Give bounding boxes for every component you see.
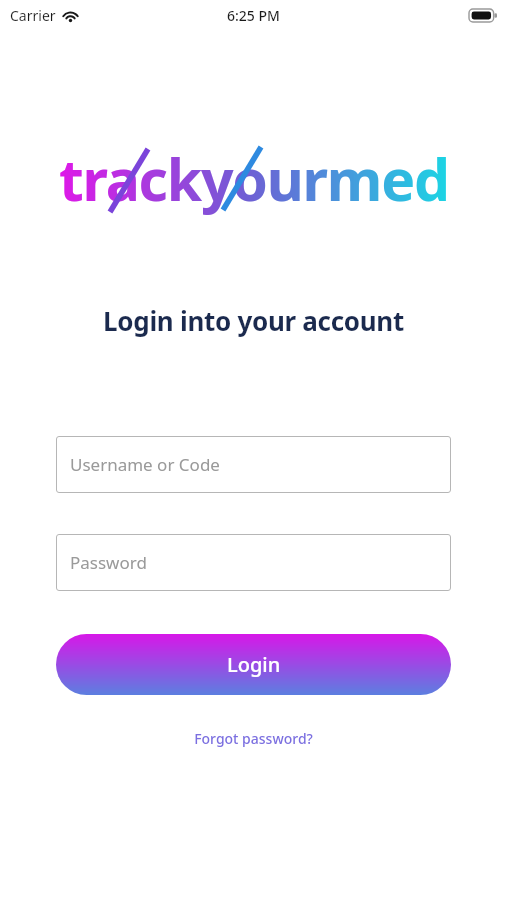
button[interactable]: Username or Code [56, 436, 451, 493]
button[interactable]: Password [56, 534, 451, 591]
button[interactable]: Login [56, 634, 451, 695]
staticText: trackyourmed [59, 140, 449, 218]
button[interactable]: Forgot password? [56, 725, 451, 752]
staticText: Username or Code [70, 453, 220, 476]
staticText: Carrier [10, 6, 56, 25]
staticText: Login into your account [0, 303, 507, 338]
staticText: Password [70, 551, 147, 574]
staticText: 6:25 PM [227, 6, 280, 25]
staticText: Login [227, 651, 281, 678]
